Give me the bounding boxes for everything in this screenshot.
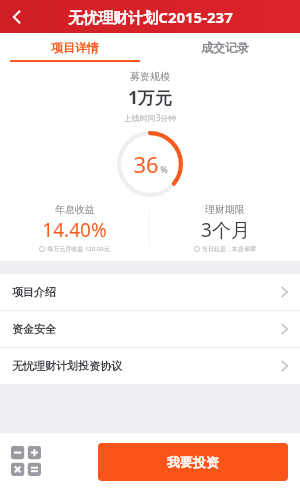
- staticText: 项目详情: [51, 40, 99, 55]
- staticText: 年息收益: [55, 203, 95, 216]
- button[interactable]: 项目详情: [0, 33, 150, 62]
- button[interactable]: Calculator: [6, 441, 46, 481]
- button[interactable]: 资金安全: [0, 311, 300, 347]
- staticText: 理财期限: [205, 203, 245, 216]
- button[interactable]: 我要投资: [98, 443, 288, 481]
- staticText: 无忧理财计划C2015-237: [68, 7, 233, 27]
- staticText: 36: [133, 149, 159, 179]
- button[interactable]: Back: [0, 0, 34, 33]
- staticText: 我要投资: [167, 454, 219, 470]
- button[interactable]: 成交记录: [150, 33, 300, 62]
- staticText: 资金安全: [12, 322, 56, 336]
- button[interactable]: 无忧理财计划投资协议: [0, 348, 300, 384]
- staticText: 每万元月收益 120.00元: [47, 245, 110, 253]
- staticText: 募资规模: [0, 70, 300, 83]
- staticText: 成交记录: [201, 40, 249, 55]
- staticText: 上线时间3分钟: [0, 112, 300, 123]
- staticText: %: [160, 163, 168, 175]
- staticText: 1万元: [0, 86, 300, 109]
- staticText: 当日起息，本息保障: [202, 245, 256, 253]
- staticText: 项目介绍: [12, 285, 56, 299]
- staticText: 无忧理财计划投资协议: [12, 359, 122, 373]
- button[interactable]: 项目介绍: [0, 274, 300, 310]
- staticText: 3个月: [201, 217, 250, 243]
- staticText: 14.40%: [42, 217, 107, 243]
